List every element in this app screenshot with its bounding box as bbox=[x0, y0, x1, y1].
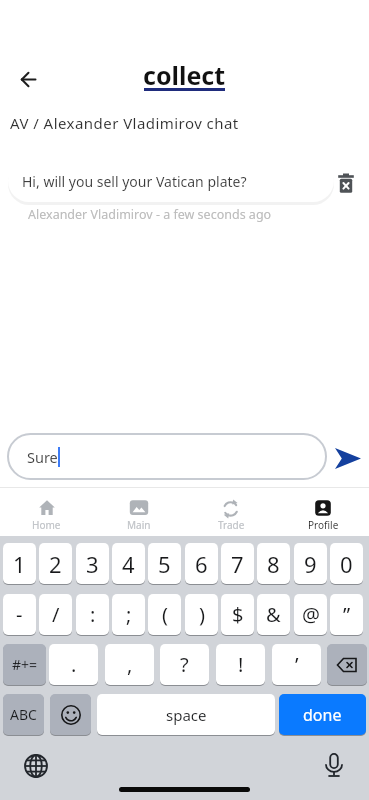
button[interactable]: Home bbox=[0, 487, 93, 536]
staticText: : bbox=[90, 601, 96, 628]
staticText: ( bbox=[162, 601, 168, 628]
staticText: 4 bbox=[122, 549, 135, 579]
button[interactable] bbox=[331, 444, 365, 472]
button[interactable]: 7 bbox=[221, 543, 254, 584]
button[interactable]: , bbox=[105, 644, 154, 685]
staticText: & bbox=[266, 601, 281, 628]
button[interactable]: 3 bbox=[76, 543, 109, 584]
button[interactable]: & bbox=[257, 594, 290, 635]
staticText: - bbox=[16, 601, 23, 628]
staticText: ) bbox=[199, 601, 205, 628]
button[interactable] bbox=[336, 172, 356, 194]
button[interactable] bbox=[50, 694, 91, 735]
staticText: 5 bbox=[158, 549, 171, 579]
button[interactable]: ; bbox=[112, 594, 145, 635]
staticText: #+= bbox=[12, 655, 38, 674]
button[interactable]: ’ bbox=[272, 644, 321, 685]
staticText: Main bbox=[127, 518, 151, 532]
staticText: collect bbox=[143, 58, 226, 92]
staticText: space bbox=[166, 705, 207, 725]
staticText: Trade bbox=[218, 518, 245, 532]
staticText: 1 bbox=[13, 549, 26, 579]
button[interactable]: space bbox=[97, 694, 275, 735]
button[interactable] bbox=[13, 64, 43, 94]
button[interactable]: ” bbox=[330, 594, 363, 635]
staticText: Profile bbox=[308, 518, 339, 532]
button[interactable] bbox=[322, 750, 345, 780]
staticText: 2 bbox=[49, 549, 62, 579]
button[interactable]: Profile bbox=[277, 487, 369, 536]
button[interactable]: done bbox=[279, 694, 366, 735]
staticText: ? bbox=[180, 651, 189, 678]
staticText: $ bbox=[232, 601, 244, 628]
button[interactable]: 4 bbox=[112, 543, 145, 584]
button[interactable]: $ bbox=[221, 594, 254, 635]
button[interactable]: 5 bbox=[148, 543, 181, 584]
staticText: @ bbox=[302, 601, 320, 628]
button[interactable]: : bbox=[76, 594, 109, 635]
staticText: Alexander Vladimirov - a few seconds ago bbox=[28, 206, 272, 223]
staticText: . bbox=[71, 651, 77, 678]
staticText: ! bbox=[238, 651, 244, 678]
button[interactable]: ( bbox=[148, 594, 181, 635]
button[interactable] bbox=[22, 752, 49, 779]
button[interactable]: @ bbox=[294, 594, 327, 635]
button[interactable]: 9 bbox=[294, 543, 327, 584]
button[interactable]: #+= bbox=[3, 644, 46, 685]
button[interactable]: 1 bbox=[3, 543, 36, 584]
button[interactable]: Main bbox=[93, 487, 185, 536]
button[interactable] bbox=[327, 644, 367, 685]
button[interactable]: 6 bbox=[185, 543, 218, 584]
button[interactable]: - bbox=[3, 594, 36, 635]
button[interactable]: Trade bbox=[185, 487, 277, 536]
staticText: 8 bbox=[267, 549, 280, 579]
button[interactable]: ABC bbox=[3, 694, 44, 735]
staticText: 7 bbox=[231, 549, 244, 579]
staticText: 3 bbox=[86, 549, 99, 579]
staticText: Home bbox=[32, 518, 61, 532]
staticText: / bbox=[52, 601, 60, 628]
staticText: ” bbox=[343, 601, 351, 628]
staticText: 0 bbox=[340, 549, 353, 579]
button[interactable]: 8 bbox=[257, 543, 290, 584]
button[interactable]: / bbox=[39, 594, 72, 635]
staticText: 9 bbox=[304, 549, 317, 579]
staticText: ’ bbox=[295, 651, 299, 678]
button[interactable]: Sure bbox=[7, 433, 327, 480]
staticText: ABC bbox=[10, 705, 37, 724]
button[interactable]: . bbox=[49, 644, 98, 685]
staticText: 6 bbox=[195, 549, 208, 579]
button[interactable]: ) bbox=[185, 594, 218, 635]
staticText: AV / Alexander Vladimirov chat bbox=[10, 113, 239, 133]
button[interactable]: ! bbox=[216, 644, 265, 685]
staticText: , bbox=[127, 651, 133, 678]
button[interactable]: ? bbox=[160, 644, 209, 685]
button[interactable]: Hi, will you sell your Vatican plate? bbox=[8, 160, 334, 202]
staticText: ; bbox=[126, 601, 132, 628]
staticText: done bbox=[303, 704, 342, 726]
button[interactable]: 0 bbox=[330, 543, 363, 584]
staticText: Sure bbox=[27, 447, 58, 467]
staticText: Hi, will you sell your Vatican plate? bbox=[22, 172, 247, 191]
button[interactable]: 2 bbox=[39, 543, 72, 584]
